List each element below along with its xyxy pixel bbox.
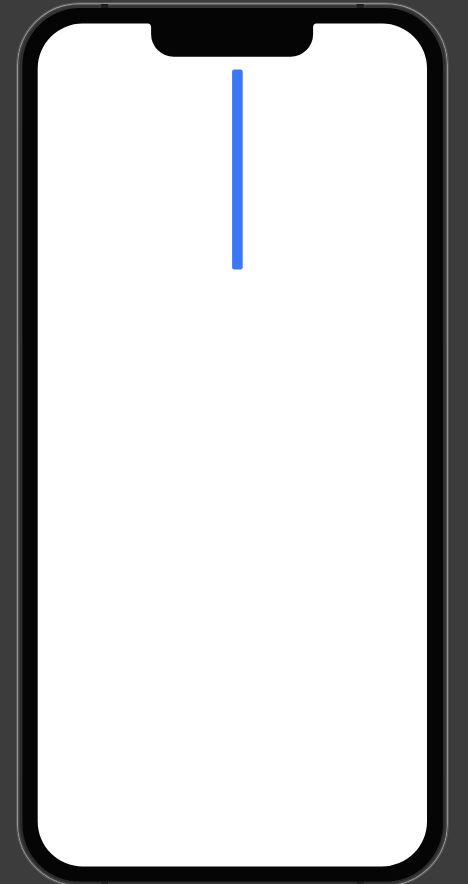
button[interactable]: Phone device mockup preview [0,0,468,884]
